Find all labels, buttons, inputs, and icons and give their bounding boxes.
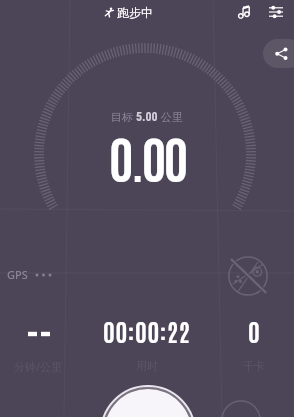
button[interactable]: Share (263, 39, 294, 68)
button[interactable]: 0 (214, 315, 294, 373)
button[interactable]: Music (233, 0, 257, 24)
staticText: 5.00 (136, 110, 158, 124)
button[interactable]: Settings (264, 0, 288, 24)
staticText: 0 (248, 315, 261, 346)
button[interactable]: Pause (104, 389, 192, 417)
button[interactable]: 00:00:22 (100, 315, 194, 373)
staticText: 公里 (158, 109, 183, 124)
staticText: 目标 (111, 109, 136, 124)
button[interactable]: Map (227, 255, 269, 297)
staticText: GPS (7, 267, 28, 282)
button[interactable]: 分钟/公里 (0, 315, 77, 373)
staticText: 分钟/公里 (14, 359, 63, 374)
button[interactable]: Lock (222, 401, 260, 417)
staticText: 0.00 (109, 124, 186, 189)
staticText: 用时 (136, 359, 158, 373)
staticText: 千卡 (243, 359, 265, 373)
staticText: 跑步中 (117, 5, 153, 20)
staticText: 00:00:22 (103, 315, 191, 346)
